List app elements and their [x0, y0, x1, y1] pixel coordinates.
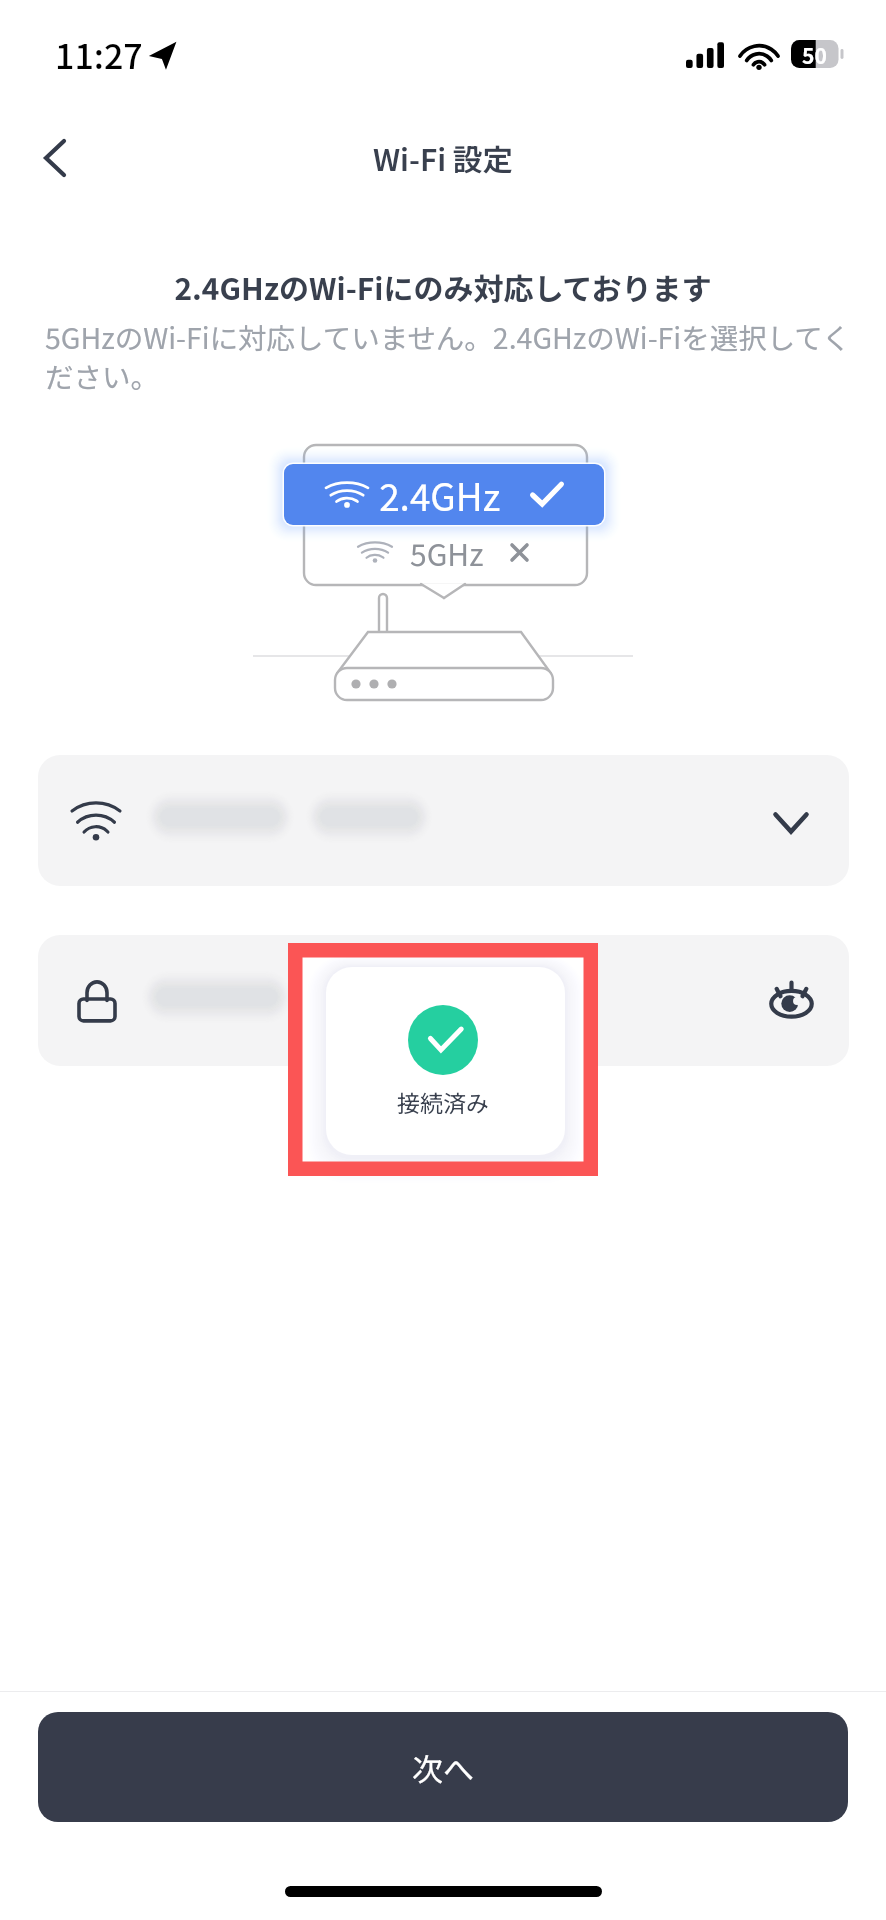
button[interactable]: 接続済み [326, 967, 565, 1155]
button[interactable]: 2.4GHz [284, 464, 604, 525]
button[interactable]: 次へ [38, 1712, 848, 1822]
staticText: 5GHz [410, 531, 484, 574]
button[interactable]: Select network [763, 793, 819, 849]
staticText: 次へ [412, 1745, 474, 1790]
staticText: 11:27 [55, 30, 143, 79]
staticText: 2.4GHzのWi-Fiにのみ対応しております [42, 265, 844, 308]
staticText: Wi-Fi 設定 [373, 136, 513, 179]
staticText: 接続済み [397, 1085, 489, 1118]
button[interactable]: Select network [38, 755, 849, 886]
staticText: 5GHzのWi-Fiに対応していません。2.4GHzのWi-Fiを選択してく だ… [45, 316, 851, 396]
staticText: 2.4GHz [379, 468, 501, 522]
button[interactable]: Back [22, 125, 88, 191]
button[interactable]: Show password [759, 972, 817, 1030]
staticText: 50 [802, 40, 827, 68]
button[interactable]: Show password [38, 935, 849, 1066]
